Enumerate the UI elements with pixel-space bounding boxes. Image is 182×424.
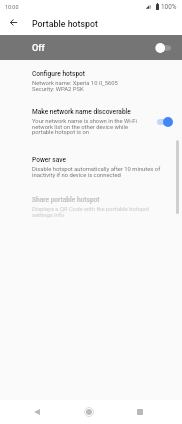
staticText: Off [32, 42, 45, 53]
button[interactable]: Configure hotspot [0, 70, 182, 93]
staticText: 100% [161, 3, 177, 11]
button[interactable]: Make network name discoverable [0, 108, 182, 136]
button[interactable]: Back [25, 400, 49, 424]
staticText: Make network name discoverable [32, 108, 131, 116]
staticText: Power save [32, 156, 66, 164]
button[interactable]: Recent apps [128, 400, 152, 424]
button[interactable]: Home [77, 400, 101, 424]
staticText: Displays a QR Code with the portable hot… [32, 206, 150, 219]
button[interactable]: Navigate up [0, 11, 26, 33]
button[interactable]: Power save [0, 156, 182, 179]
staticText: Portable hotspot [32, 19, 98, 29]
button[interactable]: Share portable hotspot [0, 196, 182, 219]
button[interactable]: Off [0, 35, 182, 60]
staticText: Share portable hotspot [32, 196, 100, 204]
staticText: 10:00 [5, 4, 19, 10]
staticText: Your network name is shown in the Wi-Fi … [32, 118, 137, 136]
staticText: Network name: Xperia 10 II_5605 Security… [32, 80, 118, 93]
staticText: Configure hotspot [32, 70, 86, 78]
staticText: Disable hotspot automatically after 10 m… [32, 166, 161, 179]
